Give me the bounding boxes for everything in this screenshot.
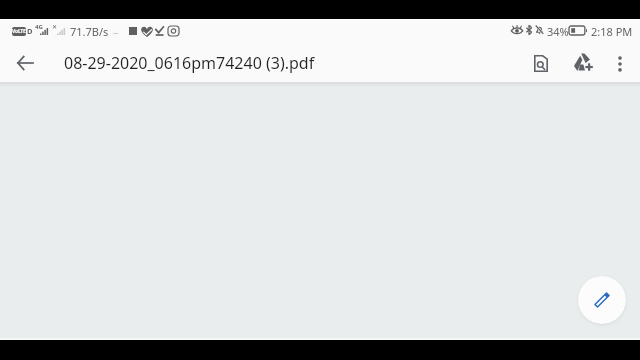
staticText: ✕ (52, 23, 58, 30)
button[interactable]: Search document (521, 44, 561, 83)
staticText: 2:18 PM (591, 24, 633, 39)
button[interactable]: More options (600, 44, 640, 83)
staticText: VoLTE (12, 28, 26, 35)
staticText: 71.7B/s (70, 24, 109, 39)
staticText: 08-29-2020_0616pm74240 (3).pdf (64, 52, 315, 74)
staticText: 34% (547, 24, 569, 39)
button[interactable]: Save to Drive (564, 43, 603, 82)
staticText: D (27, 26, 33, 36)
staticText: 4G (35, 23, 43, 31)
button[interactable]: Back (5, 43, 45, 82)
staticText: – (113, 24, 119, 39)
button[interactable]: Edit (578, 276, 626, 324)
